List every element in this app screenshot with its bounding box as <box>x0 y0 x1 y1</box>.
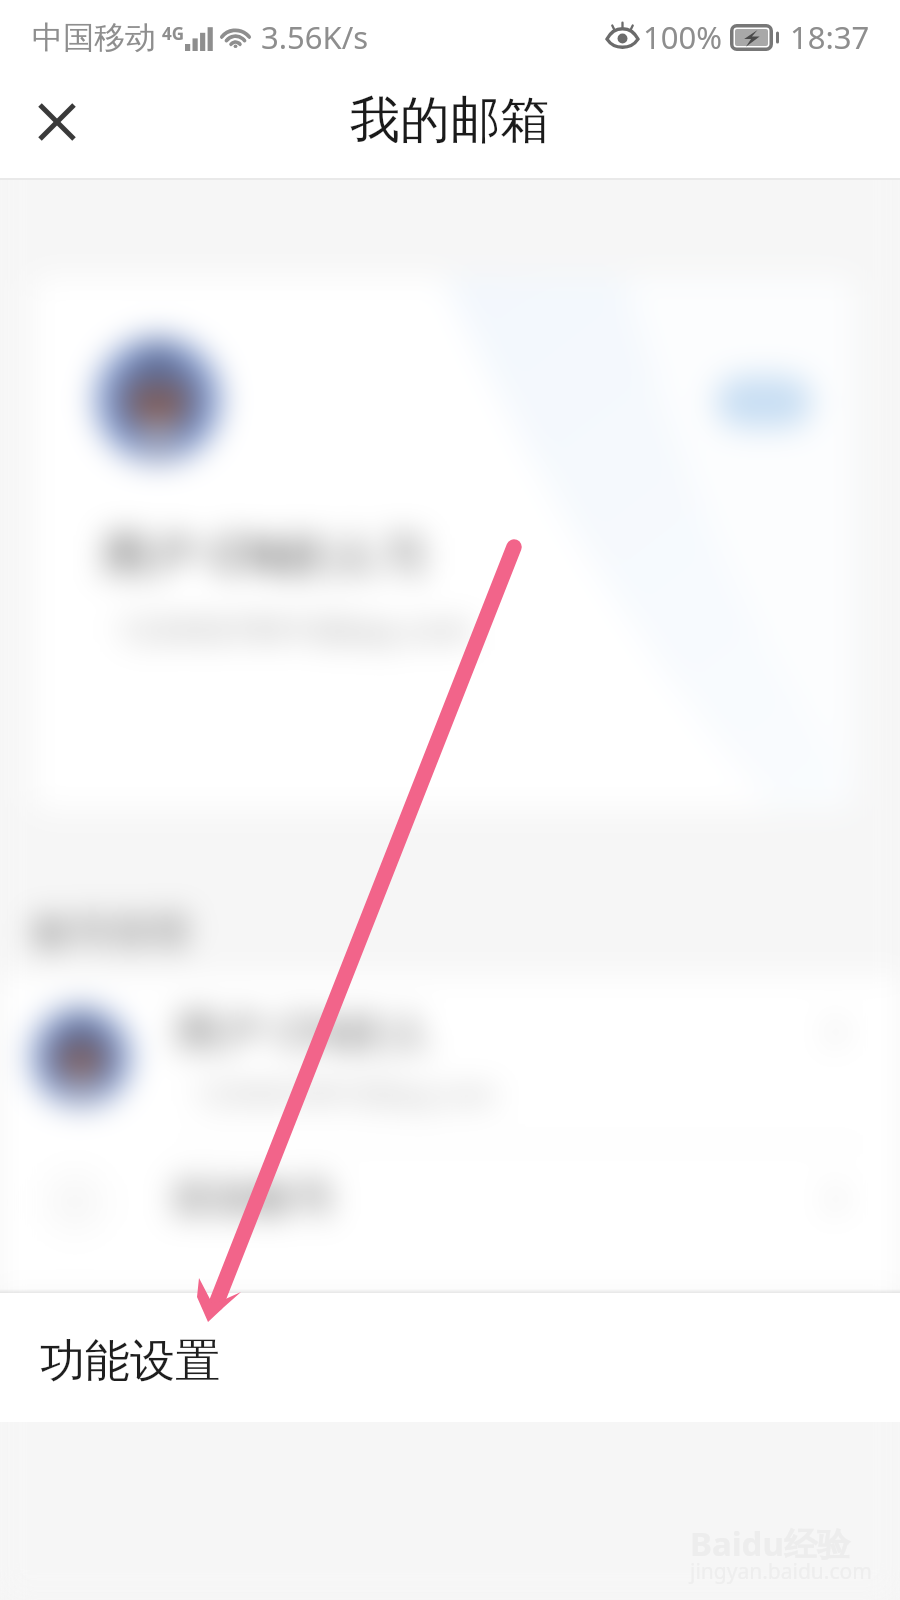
staticText: 12345678910@qq.com <box>118 608 472 650</box>
button[interactable]: Close <box>20 89 94 163</box>
staticText: 3.56K/s <box>261 16 369 58</box>
staticText: 用户 CN好人 <box>175 1001 433 1060</box>
staticText: 功能设置 <box>40 1333 220 1390</box>
button[interactable]: 用户 CN好人习 <box>32 277 856 810</box>
staticText: Baidu经验 <box>690 1521 850 1566</box>
staticText: 账号管理 <box>33 909 189 956</box>
button[interactable]: 添加账号 <box>0 1145 900 1293</box>
button[interactable]: 功能设置 <box>0 1293 900 1422</box>
button[interactable]: 用户 CN好人 <box>0 975 900 1145</box>
staticText: 100% <box>643 16 722 58</box>
staticText: 用户 CN好人习 <box>102 522 429 585</box>
staticText: 中国移动 <box>32 18 156 57</box>
staticText: 我的邮箱 <box>350 89 550 152</box>
staticText: 添加账号 <box>171 1173 335 1223</box>
staticText: 4G <box>162 22 185 45</box>
staticText: 12345678910@qq.com <box>195 1074 495 1112</box>
staticText: jingyan.baidu.com <box>690 1557 872 1586</box>
staticText: 18:37 <box>790 16 870 58</box>
